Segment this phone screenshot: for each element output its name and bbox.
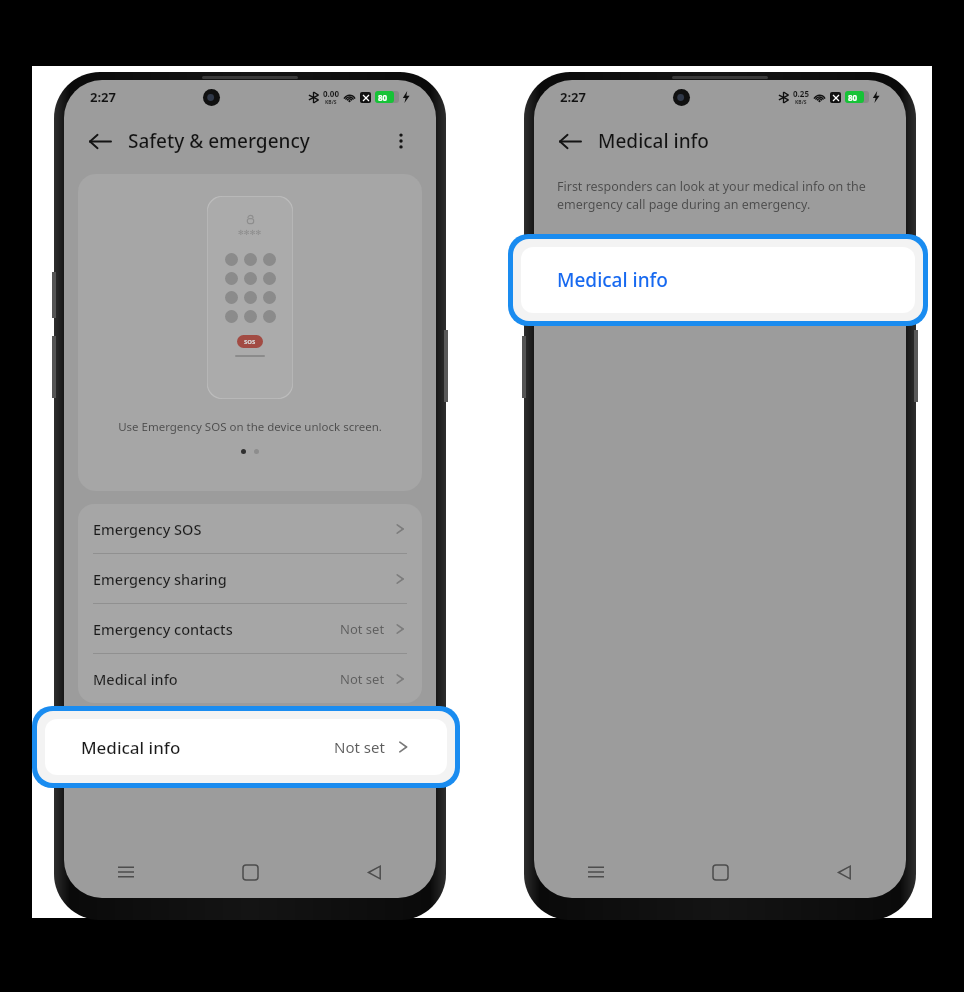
staticText: Not set [334,737,385,757]
button[interactable]: More options [384,124,418,158]
button[interactable]: Medical info [78,654,422,703]
button[interactable]: Back [312,850,436,894]
button[interactable]: Home [658,850,782,894]
staticText: Safety & emergency [128,128,310,154]
button[interactable]: Back [782,850,906,894]
button[interactable]: Home [188,850,312,894]
button[interactable]: Medical info [521,247,915,313]
staticText: 2:27 [560,88,586,106]
staticText: Medical info [81,736,181,759]
staticText: 0.00 [323,88,339,99]
staticText: Medical info [598,128,709,154]
staticText: Emergency sharing [93,569,227,589]
staticText: Emergency SOS [93,519,202,539]
staticText: 80 [378,92,388,103]
button[interactable]: Back [552,123,588,159]
staticText: Use Emergency SOS on the device unlock s… [118,419,382,435]
button[interactable]: Recents [64,850,188,894]
staticText: 80 [848,92,858,103]
staticText: Google Play services [93,713,199,728]
button[interactable]: Medical info [45,719,447,775]
staticText: KB/S [325,99,337,106]
staticText: 2:27 [90,88,116,106]
button[interactable]: Emergency Location Service [78,735,422,784]
staticText: First responders can look at your medica… [557,178,866,213]
staticText: Emergency Location Service [93,750,287,770]
button[interactable]: Emergency sharing [78,554,422,603]
staticText: Emergency contacts [93,619,233,639]
button[interactable]: Emergency SOS [78,504,422,553]
button[interactable]: Recents [534,850,658,894]
staticText: Medical info [93,669,178,689]
staticText: ✻✻✻✻ [238,229,262,237]
staticText: KB/S [795,99,807,106]
staticText: Not set [340,620,385,638]
button[interactable]: Emergency contacts [78,604,422,653]
staticText: Not set [340,670,385,688]
staticText: SOS [244,338,256,346]
staticText: Medical info [557,267,668,293]
button[interactable]: Back [82,123,118,159]
staticText: 0.25 [793,88,809,99]
